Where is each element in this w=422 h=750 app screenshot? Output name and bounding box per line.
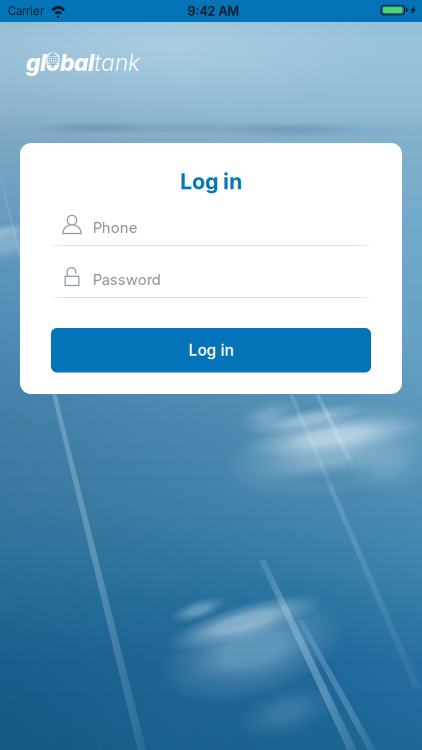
button[interactable]: Log in: [51, 328, 371, 372]
staticText: Log in: [188, 341, 233, 360]
staticText: Phone: [93, 219, 138, 236]
staticText: tank: [94, 49, 140, 76]
staticText: global: [26, 49, 94, 76]
button[interactable]: Phone: [51, 208, 371, 246]
staticText: Log in: [180, 168, 242, 194]
staticText: 9:42 AM: [187, 4, 239, 19]
button[interactable]: Password: [51, 260, 371, 298]
staticText: Password: [93, 271, 161, 288]
staticText: Carrier: [8, 4, 44, 18]
